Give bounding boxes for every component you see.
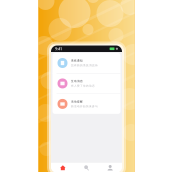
button[interactable]: Home xyxy=(51,163,75,172)
staticText: 您有新的系统消息待 xyxy=(71,64,98,67)
staticText: 活动提醒 xyxy=(71,100,83,103)
button[interactable]: 活动提醒 xyxy=(52,94,120,114)
staticText: 有人赞了你的动态 xyxy=(71,84,95,87)
button[interactable]: Profile xyxy=(98,163,122,172)
staticText: 新活动开始快来参与 xyxy=(71,105,98,108)
staticText: 互动消息 xyxy=(71,79,83,83)
button[interactable]: 互动消息 xyxy=(52,73,120,93)
button[interactable]: Discover xyxy=(75,163,98,172)
staticText: 系统通知 xyxy=(71,59,83,62)
button[interactable]: 系统通知 xyxy=(52,53,120,73)
staticText: 9:41 xyxy=(55,46,62,51)
